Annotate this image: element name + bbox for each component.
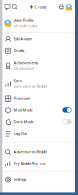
- button[interactable]: Settings: [2, 173, 75, 185]
- staticText: 24 unlocked: [14, 65, 34, 71]
- staticText: Log Out: [14, 131, 27, 136]
- button[interactable]: Drafts: [2, 45, 75, 56]
- button[interactable]: Mod Mode: [2, 104, 75, 116]
- staticText: u/renders-dev: [14, 23, 38, 28]
- button[interactable]: Log Out: [2, 128, 75, 139]
- staticText: Earn cash on Reddit: [14, 83, 47, 89]
- button[interactable]: Dark Mode: [2, 116, 75, 128]
- staticText: Advertise on Reddit: [14, 149, 47, 154]
- button[interactable]: View Profile: [2, 14, 75, 32]
- staticText: Try Reddit Pro: [14, 161, 38, 166]
- button[interactable]: Chat: [4, 0, 11, 13]
- button[interactable]: Notifications: [58, 0, 65, 13]
- staticText: Achievements: [14, 60, 39, 65]
- staticText: Earn: [14, 78, 22, 83]
- staticText: Drafts: [14, 48, 25, 53]
- staticText: Mod Mode: [14, 107, 33, 113]
- button[interactable]: Earn: [2, 74, 75, 92]
- staticText: BETA: [40, 162, 46, 165]
- button[interactable]: Advertise on Reddit: [2, 146, 75, 158]
- button[interactable]: Account: [65, 0, 72, 13]
- staticText: Premium: [14, 96, 31, 101]
- button[interactable]: Try Reddit Pro: [2, 158, 75, 169]
- button[interactable]: Search: [11, 0, 18, 13]
- button[interactable]: Create: [28, 0, 48, 13]
- staticText: Edit Avatar: [14, 36, 33, 41]
- staticText: Settings: [14, 177, 27, 182]
- staticText: Create: [34, 4, 46, 9]
- button[interactable]: Premium: [2, 92, 75, 104]
- staticText: View Profile: [14, 18, 34, 23]
- button[interactable]: Achievements: [2, 56, 75, 74]
- staticText: Dark Mode: [14, 119, 34, 124]
- button[interactable]: Edit Avatar: [2, 33, 75, 45]
